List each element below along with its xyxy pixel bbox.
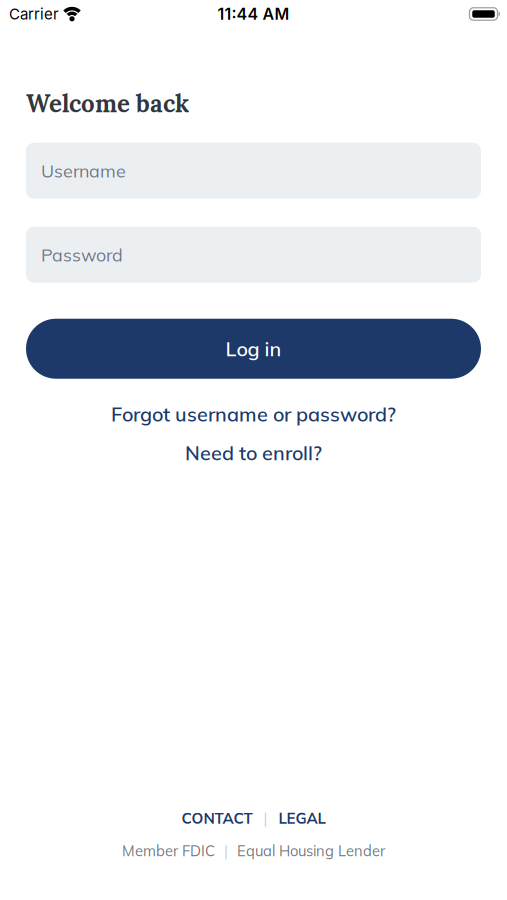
button[interactable]: LEGAL — [278, 809, 325, 828]
staticText: Member FDIC — [122, 842, 215, 860]
staticText: | — [224, 842, 228, 860]
button[interactable]: Forgot username or password? — [111, 402, 396, 426]
staticText: Username — [41, 159, 126, 182]
button[interactable]: Log in — [26, 319, 481, 379]
staticText: CONTACT — [181, 809, 252, 828]
staticText: Need to enroll? — [185, 440, 322, 465]
staticText: LEGAL — [278, 809, 325, 828]
button[interactable]: Need to enroll? — [185, 440, 322, 465]
staticText: Equal Housing Lender — [237, 842, 385, 860]
button[interactable]: Password — [26, 227, 481, 283]
staticText: 11:44 AM — [217, 4, 289, 24]
staticText: Log in — [225, 336, 281, 361]
staticText: Forgot username or password? — [111, 402, 396, 426]
staticText: Password — [41, 243, 123, 266]
button[interactable]: Username — [26, 143, 481, 199]
staticText: Carrier — [9, 5, 59, 23]
button[interactable]: CONTACT — [181, 809, 252, 828]
staticText: | — [263, 809, 267, 827]
staticText: Welcome back — [26, 88, 189, 119]
